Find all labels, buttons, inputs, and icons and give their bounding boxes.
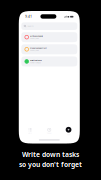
button[interactable]: Prepare an abstract	[21, 44, 77, 54]
staticText: Prepare an abstract	[30, 47, 47, 49]
button[interactable]: New	[60, 127, 76, 136]
staticText: Print the tasks	[30, 59, 42, 61]
staticText: Write a synopsis	[30, 35, 43, 37]
staticText: 9:41	[25, 15, 32, 18]
staticText: so you don't forget	[19, 160, 82, 169]
button[interactable]: Today	[41, 127, 57, 136]
staticText: Write down tasks	[22, 150, 79, 159]
button[interactable]: Lists	[22, 127, 38, 136]
button[interactable]: Search	[21, 22, 77, 30]
button[interactable]: Write a synopsis	[21, 32, 77, 42]
button[interactable]: Print the tasks	[21, 56, 77, 66]
staticText: Today, 10:00	[30, 38, 39, 39]
staticText: Search	[27, 25, 33, 27]
staticText: New	[67, 134, 70, 136]
staticText: Tomorrow, 9:00	[30, 62, 41, 64]
staticText: Today, 15:30	[30, 50, 39, 51]
